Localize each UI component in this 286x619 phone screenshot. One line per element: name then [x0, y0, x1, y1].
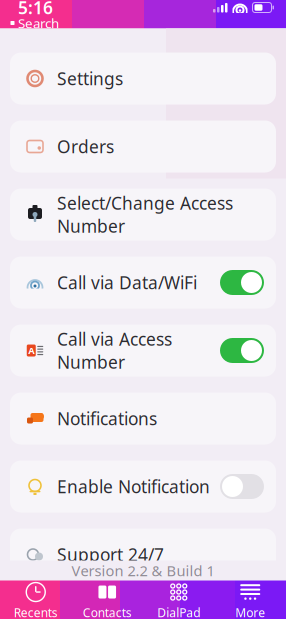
button[interactable]: Call via Data/WiFi: [10, 256, 276, 308]
staticText: Recents: [14, 604, 58, 619]
staticText: Contacts: [83, 604, 132, 619]
button[interactable]: A: [10, 324, 276, 376]
staticText: Search: [18, 14, 59, 32]
staticText: Call via Access Number: [57, 327, 172, 373]
button[interactable]: More: [214, 580, 286, 619]
button[interactable]: Enable Notification: [10, 460, 276, 512]
button[interactable]: Orders: [10, 120, 276, 172]
staticText: Notifications: [57, 407, 157, 430]
button[interactable]: DialPad: [143, 580, 214, 619]
button[interactable]: Settings: [10, 52, 276, 104]
staticText: Support 24/7: [57, 543, 164, 566]
staticText: Settings: [57, 67, 123, 90]
staticText: A: [28, 344, 34, 357]
staticText: Call via Data/WiFi: [57, 271, 197, 294]
staticText: 5:16: [18, 0, 53, 19]
staticText: Version 2.2 & Build 1: [71, 561, 214, 580]
staticText: Enable Notification: [57, 475, 210, 498]
button[interactable]: Select/Change Access Number: [10, 188, 276, 240]
staticText: Select/Change Access Number: [57, 191, 233, 237]
staticText: Orders: [57, 135, 114, 158]
staticText: DialPad: [157, 604, 200, 619]
button[interactable]: Notifications: [10, 392, 276, 444]
staticText: More: [235, 604, 265, 619]
button[interactable]: Recents: [0, 580, 71, 619]
button[interactable]: Support 24/7: [10, 528, 276, 580]
button[interactable]: Contacts: [71, 580, 143, 619]
